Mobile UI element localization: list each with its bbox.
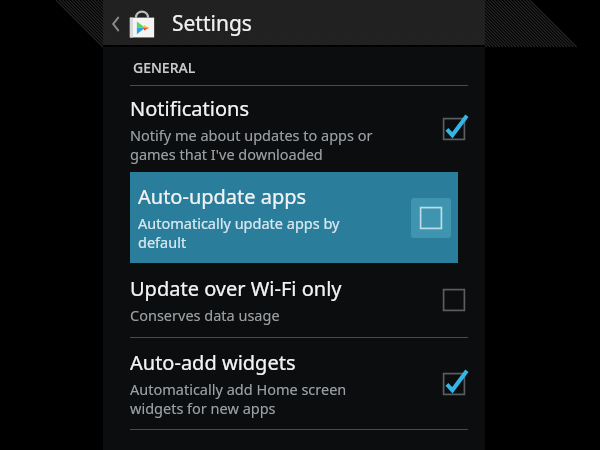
staticText: Settings (172, 9, 252, 38)
button[interactable]: Notifications (103, 86, 485, 172)
staticText: Auto-add widgets (130, 349, 296, 376)
staticText: Conserves data usage (130, 305, 280, 325)
button[interactable]: Auto-update apps (130, 172, 458, 263)
staticText: GENERAL (133, 58, 196, 77)
staticText: Notify me about updates to apps or games… (130, 125, 373, 164)
button[interactable]: Unchecked (411, 198, 451, 238)
button[interactable]: Update over Wi-Fi only (103, 263, 485, 337)
button[interactable]: Auto-add widgets (103, 338, 485, 429)
button[interactable]: Navigate up (103, 0, 162, 47)
button[interactable]: Checked (434, 109, 474, 149)
staticText: Auto-update apps (138, 183, 307, 210)
button[interactable]: Unchecked (434, 280, 474, 320)
staticText: Update over Wi-Fi only (130, 275, 342, 302)
staticText: Notifications (130, 95, 249, 122)
staticText: Automatically update apps by default (138, 213, 340, 252)
button[interactable]: Checked (434, 364, 474, 404)
staticText: Automatically add Home screen widgets fo… (130, 379, 347, 418)
